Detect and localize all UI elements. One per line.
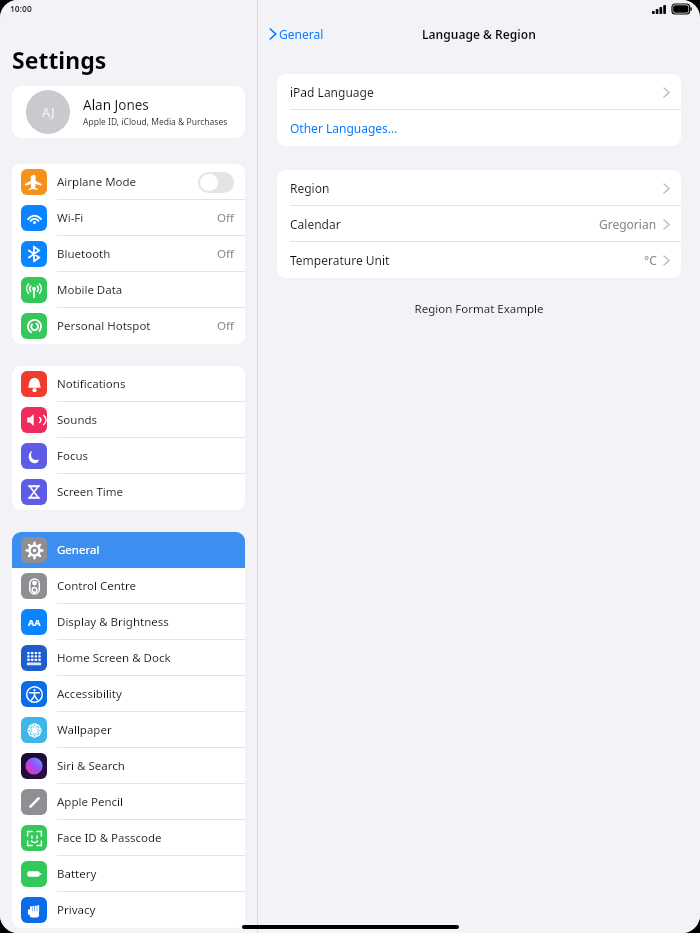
staticText: Mobile Data	[57, 282, 234, 298]
button[interactable]: General	[12, 532, 245, 568]
staticText: Focus	[57, 448, 234, 464]
button[interactable]: iPad Language	[277, 74, 681, 110]
staticText: Home Screen & Dock	[57, 650, 234, 666]
staticText: Battery	[57, 866, 234, 882]
button[interactable]: AA	[12, 604, 245, 640]
staticText: Bluetooth	[57, 246, 217, 262]
button[interactable]: AJ	[12, 86, 245, 138]
button[interactable]: Privacy	[12, 892, 245, 928]
staticText: Screen Time	[57, 484, 234, 500]
staticText: iPad Language	[290, 84, 662, 100]
staticText: Alan Jones	[83, 96, 149, 114]
staticText: Region Format Example	[258, 301, 700, 317]
button[interactable]: Control Centre	[12, 568, 245, 604]
staticText: AJ	[42, 103, 55, 121]
button[interactable]: Siri & Search	[12, 748, 245, 784]
staticText: Apple Pencil	[57, 794, 234, 810]
button[interactable]: Wi-Fi	[12, 200, 245, 236]
button[interactable]: Calendar	[277, 206, 681, 242]
staticText: Region	[290, 180, 662, 196]
staticText: Siri & Search	[57, 758, 234, 774]
button[interactable]: Personal Hotspot	[12, 308, 245, 344]
staticText: Language & Region	[422, 26, 536, 42]
staticText: AA	[28, 616, 41, 628]
button[interactable]: Accessibility	[12, 676, 245, 712]
staticText: Notifications	[57, 376, 234, 392]
button[interactable]: Screen Time	[12, 474, 245, 510]
staticText: Control Centre	[57, 578, 234, 594]
staticText: Temperature Unit	[290, 252, 644, 268]
staticText: Apple ID, iCloud, Media & Purchases	[83, 116, 228, 128]
staticText: General	[279, 26, 324, 42]
staticText: Privacy	[57, 902, 234, 918]
button[interactable]: Notifications	[12, 366, 245, 402]
button[interactable]: Wallpaper	[12, 712, 245, 748]
button[interactable]: Airplane Mode	[12, 164, 245, 200]
button[interactable]: Airplane Mode toggle	[198, 172, 234, 193]
button[interactable]: Region	[277, 170, 681, 206]
button[interactable]: Home Screen & Dock	[12, 640, 245, 676]
staticText: Face ID & Passcode	[57, 830, 234, 846]
button[interactable]: Bluetooth	[12, 236, 245, 272]
button[interactable]: Focus	[12, 438, 245, 474]
staticText: Gregorian	[599, 216, 657, 232]
staticText: Wallpaper	[57, 722, 234, 738]
button[interactable]: Temperature Unit	[277, 242, 681, 278]
staticText: 10:00	[10, 3, 32, 15]
staticText: Airplane Mode	[57, 174, 198, 190]
staticText: Calendar	[290, 216, 599, 232]
staticText: Other Languages...	[290, 120, 671, 136]
staticText: Off	[217, 318, 234, 334]
staticText: Settings	[12, 44, 107, 75]
button[interactable]: Battery	[12, 856, 245, 892]
button[interactable]: Sounds	[12, 402, 245, 438]
staticText: Personal Hotspot	[57, 318, 217, 334]
button[interactable]: Other Languages...	[277, 110, 681, 146]
staticText: Off	[217, 246, 234, 262]
button[interactable]: General	[266, 23, 326, 45]
staticText: Accessibility	[57, 686, 234, 702]
button[interactable]: Apple Pencil	[12, 784, 245, 820]
staticText: °C	[644, 252, 657, 268]
button[interactable]: Face ID & Passcode	[12, 820, 245, 856]
staticText: Off	[217, 210, 234, 226]
staticText: Sounds	[57, 412, 234, 428]
staticText: Wi-Fi	[57, 210, 217, 226]
button[interactable]: Mobile Data	[12, 272, 245, 308]
staticText: General	[57, 542, 234, 558]
staticText: Display & Brightness	[57, 614, 234, 630]
